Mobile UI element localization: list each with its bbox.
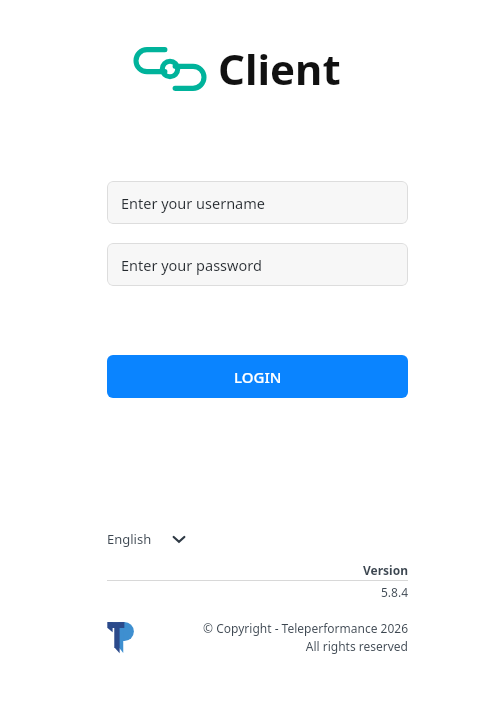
staticText: LOGIN xyxy=(234,367,282,387)
staticText: 5.8.4 xyxy=(107,584,408,600)
staticText: Enter your password xyxy=(121,255,262,275)
staticText: Client xyxy=(218,40,341,97)
button[interactable]: English xyxy=(107,526,186,552)
staticText: Enter your username xyxy=(121,193,265,213)
button[interactable]: Enter your password xyxy=(107,243,408,286)
button[interactable]: Enter your username xyxy=(107,181,408,224)
button[interactable]: LOGIN xyxy=(107,355,408,398)
other: Client logo xyxy=(136,47,204,91)
staticText: Version xyxy=(107,562,408,578)
other: Select language xyxy=(172,532,186,546)
staticText: All rights reserved xyxy=(305,638,408,654)
other: Teleperformance logo xyxy=(107,620,135,654)
staticText: © Copyright - Teleperformance 2026 xyxy=(203,620,408,636)
staticText: English xyxy=(107,530,152,548)
